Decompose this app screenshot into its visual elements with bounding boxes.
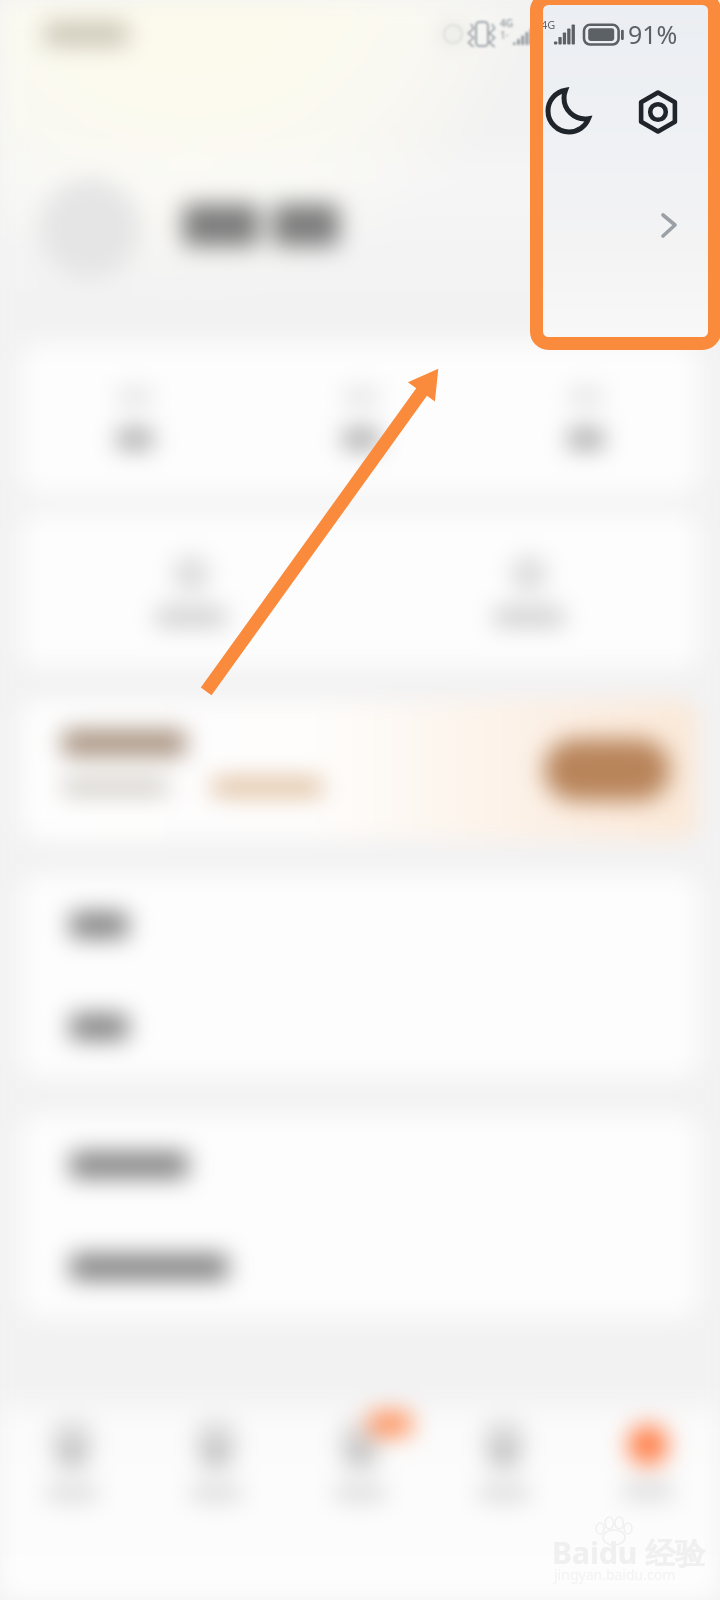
staticText: 4G [500,16,513,30]
button[interactable] [22,1216,698,1318]
button[interactable] [22,700,698,840]
staticText: 4G [543,17,556,32]
staticText: jingyan.baidu.com [554,1565,676,1584]
button[interactable] [22,1114,698,1216]
staticText: Baidu 经验 [552,1532,706,1573]
button[interactable] [22,343,248,494]
button[interactable] [22,874,698,976]
button[interactable] [248,343,473,494]
staticText: 91% [628,17,678,51]
button[interactable] [0,1395,144,1600]
button[interactable] [360,513,698,668]
staticText: 1· [500,28,509,42]
button[interactable] [432,1395,576,1600]
button[interactable] [288,1395,432,1600]
button[interactable] [144,1395,288,1600]
button[interactable] [576,1395,720,1600]
button[interactable]: More [643,199,695,251]
button[interactable] [22,976,698,1078]
button[interactable] [473,343,698,494]
button[interactable]: Settings [632,86,683,137]
button[interactable] [22,513,360,668]
button[interactable]: Night mode [543,85,594,136]
